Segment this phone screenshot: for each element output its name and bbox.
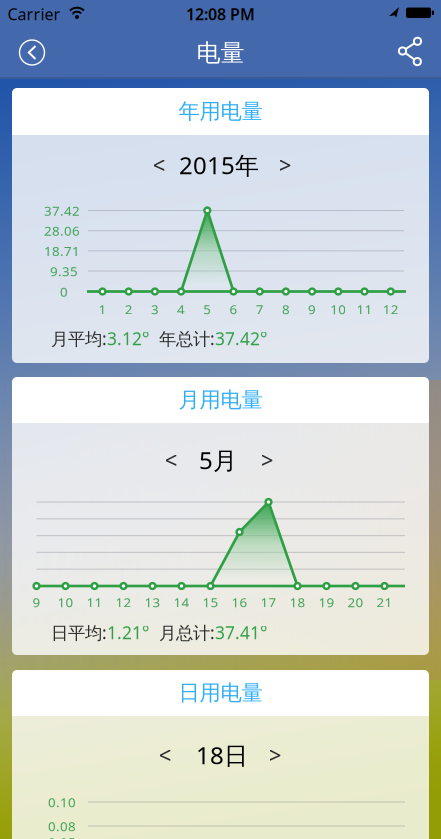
button[interactable]: Back — [15, 35, 49, 69]
staticText: 13 — [144, 593, 160, 611]
staticText: 0.10 — [48, 793, 76, 811]
staticText: 18.71 — [44, 242, 80, 260]
staticText: 月总计: — [149, 621, 215, 644]
staticText: 3 — [151, 300, 159, 318]
staticText: 1.21° — [107, 621, 149, 644]
button[interactable]: Share — [394, 34, 428, 68]
staticText: 日用电量 — [178, 680, 262, 706]
staticText: 2 — [125, 300, 133, 318]
staticText: < — [158, 740, 171, 770]
staticText: 21 — [376, 593, 392, 611]
staticText: 18 — [289, 593, 305, 611]
staticText: 0.05 — [48, 833, 76, 839]
staticText: 37.42 — [44, 202, 80, 219]
staticText: 9 — [32, 593, 40, 611]
staticText: 12 — [383, 300, 399, 318]
button[interactable]: Next month — [250, 443, 284, 477]
staticText: < — [164, 445, 177, 475]
staticText: 17 — [260, 593, 276, 611]
button[interactable]: Previous year — [142, 148, 176, 182]
staticText: 16 — [231, 593, 247, 611]
staticText: 9.35 — [50, 262, 78, 280]
button[interactable]: Next day — [258, 738, 292, 772]
staticText: 12:08 PM — [186, 3, 255, 25]
staticText: 9 — [308, 300, 316, 318]
staticText: 37.41° — [215, 621, 267, 644]
staticText: < — [152, 150, 165, 180]
staticText: 年用电量 — [178, 98, 262, 125]
staticText: 6 — [229, 300, 237, 318]
staticText: 3.12° — [107, 327, 149, 350]
staticText: 19 — [318, 593, 334, 611]
staticText: 18日 — [196, 739, 248, 771]
button[interactable]: Next year — [268, 148, 302, 182]
staticText: 1 — [98, 300, 106, 318]
staticText: 电量 — [196, 38, 244, 68]
staticText: 月平均: — [51, 327, 107, 350]
staticText: 5 — [203, 300, 211, 318]
staticText: > — [268, 740, 281, 770]
staticText: 5月 — [199, 444, 237, 476]
staticText: 2015年 — [179, 149, 259, 181]
staticText: 8 — [282, 300, 290, 318]
staticText: 20 — [347, 593, 363, 611]
staticText: 0 — [60, 283, 68, 300]
button[interactable]: Previous month — [154, 443, 188, 477]
staticText: 月用电量 — [178, 387, 262, 413]
staticText: > — [260, 445, 273, 475]
staticText: 7 — [256, 300, 264, 318]
staticText: 11 — [356, 300, 372, 318]
staticText: 日平均: — [51, 621, 107, 644]
staticText: 4 — [177, 300, 185, 318]
staticText: 0.08 — [48, 817, 76, 835]
staticText: 15 — [202, 593, 218, 611]
button[interactable]: Previous day — [148, 738, 182, 772]
staticText: 10 — [57, 593, 73, 611]
staticText: 37.42° — [215, 327, 267, 350]
staticText: Carrier — [7, 3, 60, 25]
staticText: 28.06 — [44, 222, 80, 239]
staticText: 年总计: — [149, 327, 215, 350]
staticText: 10 — [330, 300, 346, 318]
staticText: 11 — [86, 593, 102, 611]
staticText: > — [278, 150, 291, 180]
staticText: 12 — [115, 593, 131, 611]
staticText: 14 — [173, 593, 189, 611]
